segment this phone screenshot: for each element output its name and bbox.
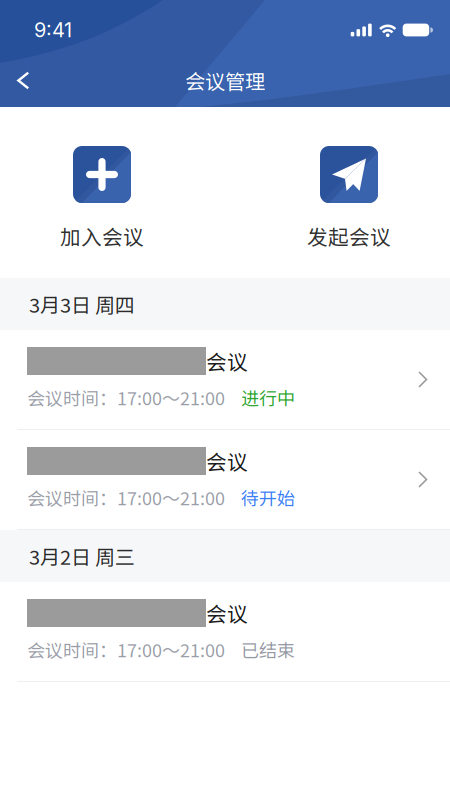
staticText: 3月3日 周四 xyxy=(29,289,135,318)
button[interactable]: 会议 xyxy=(0,330,450,430)
staticText: 会议 xyxy=(206,446,248,476)
staticText: 已结束 xyxy=(241,636,295,663)
staticText: 9:41 xyxy=(34,18,72,42)
staticText: 加入会议 xyxy=(60,221,144,251)
staticText: 进行中 xyxy=(241,384,295,411)
staticText: 3月2日 周三 xyxy=(29,541,135,570)
button[interactable]: 加入会议 xyxy=(47,107,157,278)
button[interactable]: 会议 xyxy=(0,582,450,682)
button[interactable]: Back xyxy=(3,57,43,103)
staticText: 会议时间：17:00～21:00 xyxy=(27,636,225,663)
staticText: 会议时间：17:00～21:00 xyxy=(27,484,225,511)
staticText: 待开始 xyxy=(241,484,295,511)
staticText: 会议 xyxy=(206,346,248,376)
staticText: 会议时间：17:00～21:00 xyxy=(27,384,225,411)
staticText: 发起会议 xyxy=(307,221,391,251)
button[interactable]: 发起会议 xyxy=(294,107,404,278)
staticText: 会议 xyxy=(206,598,248,628)
staticText: 会议管理 xyxy=(185,66,265,95)
button[interactable]: 会议 xyxy=(0,430,450,530)
